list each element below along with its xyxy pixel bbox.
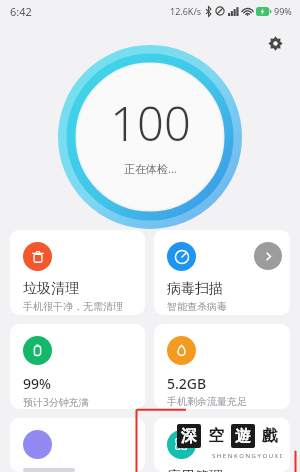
- staticText: 戲: [262, 426, 278, 446]
- staticText: 垃圾清理: [23, 280, 79, 298]
- button[interactable]: 病毒扫描: [154, 230, 290, 315]
- staticText: 5.2GB: [167, 374, 207, 393]
- staticText: 12.6K/s: [170, 5, 202, 17]
- button[interactable]: Settings: [260, 28, 290, 58]
- button[interactable]: 垃圾清理: [10, 230, 145, 315]
- staticText: 预计3分钟充满: [23, 395, 89, 409]
- button[interactable]: 5.2GB: [154, 324, 290, 409]
- button[interactable]: 扫描: [254, 242, 282, 270]
- button[interactable]: 99%: [10, 324, 145, 409]
- staticText: 应用管理: [167, 468, 223, 472]
- staticText: 6:42: [10, 4, 32, 19]
- button[interactable]: 100: [58, 45, 242, 229]
- staticText: 遊: [235, 426, 251, 446]
- button[interactable]: 应用管理: [154, 418, 290, 472]
- staticText: 100: [110, 91, 191, 155]
- staticText: 99%: [274, 5, 292, 17]
- staticText: 手机很干净，无需清理: [23, 300, 123, 313]
- staticText: 病毒扫描: [167, 280, 223, 298]
- staticText: 智能查杀病毒: [167, 300, 227, 313]
- staticText: 正在体检...: [124, 161, 177, 176]
- staticText: 手机剩余流量充足: [167, 395, 247, 408]
- button[interactable]: [10, 418, 145, 472]
- staticText: 99%: [23, 374, 51, 393]
- staticText: S H E N K O N G Y O U X I: [212, 452, 282, 460]
- staticText: 空: [208, 426, 224, 446]
- staticText: 深: [181, 426, 197, 446]
